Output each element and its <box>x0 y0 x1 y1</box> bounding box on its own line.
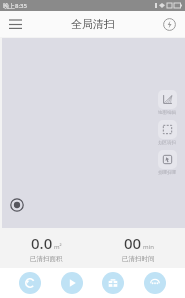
button[interactable]: Power <box>159 14 179 34</box>
button[interactable]: Undo <box>19 272 41 294</box>
staticText: 晚上8:35 <box>3 2 27 10</box>
staticText: 指哪扫哪 <box>158 170 176 176</box>
staticText: 已清扫面积 <box>30 255 63 263</box>
staticText: 地图编辑 <box>158 110 176 116</box>
button[interactable]: 指哪扫哪 <box>152 150 182 176</box>
staticText: 全局清扫 <box>71 17 115 31</box>
button[interactable]: Dock <box>102 272 124 294</box>
staticText: 已清扫时间 <box>122 255 155 263</box>
button[interactable]: Locate <box>8 196 26 214</box>
button[interactable]: More <box>144 272 166 294</box>
staticText: m² <box>54 243 62 251</box>
staticText: 00 <box>124 233 142 253</box>
button[interactable]: Menu <box>4 13 26 35</box>
staticText: 划区清扫 <box>158 140 176 146</box>
staticText: min <box>143 243 154 251</box>
button[interactable]: Start <box>61 272 83 294</box>
button[interactable]: 划区清扫 <box>152 120 182 146</box>
button[interactable]: 地图编辑 <box>152 90 182 116</box>
staticText: 0.0 <box>31 233 53 253</box>
